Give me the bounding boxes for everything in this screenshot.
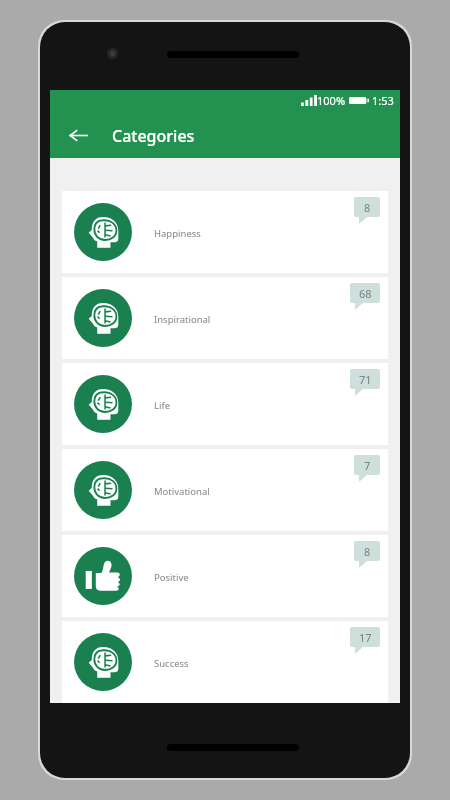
staticText: 8 — [364, 544, 371, 559]
button[interactable]: Inspirational — [62, 277, 388, 359]
button[interactable]: Happiness — [62, 191, 388, 273]
staticText: Inspirational — [154, 313, 211, 326]
staticText: 8 — [364, 200, 371, 215]
button[interactable]: Success — [62, 621, 388, 703]
staticText: Positive — [154, 571, 189, 584]
staticText: 7 — [364, 458, 371, 473]
staticText: 100% — [317, 93, 346, 108]
staticText: Happiness — [154, 227, 201, 240]
staticText: 17 — [359, 630, 372, 645]
staticText: Life — [154, 399, 171, 412]
button[interactable]: Positive — [62, 535, 388, 617]
staticText: Motivational — [154, 485, 210, 498]
staticText: 1:53 — [372, 93, 394, 108]
staticText: Success — [154, 657, 189, 670]
staticText: Categories — [112, 125, 195, 147]
button[interactable]: Life — [62, 363, 388, 445]
button[interactable]: Motivational — [62, 449, 388, 531]
staticText: 68 — [359, 286, 372, 301]
button[interactable]: Back — [56, 113, 100, 157]
staticText: 71 — [359, 372, 372, 387]
